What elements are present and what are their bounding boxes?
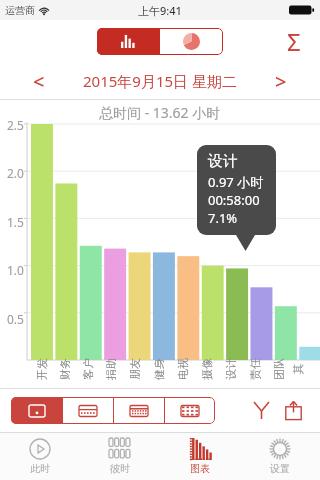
staticText: 1.5	[7, 214, 24, 230]
button[interactable]: Year view	[165, 397, 215, 424]
staticText: 设置	[270, 462, 290, 475]
staticText: 上午9:41	[138, 3, 182, 18]
button[interactable]: Day view	[11, 397, 62, 424]
staticText: 2.0	[7, 165, 24, 181]
button[interactable]: 设计	[208, 152, 264, 227]
staticText: 财务	[58, 358, 72, 380]
staticText: 2.5	[7, 117, 24, 133]
button[interactable]: 2015年9月15日 星期二	[56, 71, 264, 91]
button[interactable]: 此时	[0, 432, 80, 480]
button[interactable]: Previous day	[22, 64, 56, 98]
staticText: 00:58:00	[208, 191, 260, 209]
staticText: 彼时	[110, 462, 130, 475]
staticText: 此时	[30, 462, 50, 475]
staticText: 设计	[224, 358, 238, 380]
staticText: 7.1%	[208, 209, 238, 227]
staticText: <	[33, 68, 45, 95]
staticText: 图表	[190, 462, 210, 475]
button[interactable]: Sum	[276, 23, 312, 59]
staticText: 捐助	[104, 358, 118, 380]
staticText: 开发	[35, 358, 49, 380]
button[interactable]: Bar chart view	[97, 28, 160, 55]
staticText: 其	[290, 363, 304, 374]
staticText: 1.0	[7, 262, 24, 278]
staticText: 健身	[152, 358, 166, 380]
staticText: 总时间 - 13.62 小时	[99, 103, 221, 122]
staticText: 0.5	[7, 311, 24, 327]
button[interactable]: 彼时	[80, 432, 160, 480]
staticText: 设计	[208, 152, 238, 171]
button[interactable]: Month view	[114, 397, 164, 424]
button[interactable]: 设置	[240, 432, 320, 480]
staticText: 摄像	[200, 358, 214, 380]
staticText: 团队	[272, 358, 286, 380]
staticText: 运营商	[5, 4, 35, 17]
staticText: >	[275, 68, 287, 95]
button[interactable]: Pie chart view	[160, 28, 223, 55]
button[interactable]: Week view	[63, 397, 113, 424]
button[interactable]: Filter	[245, 394, 277, 426]
staticText: 客户	[81, 358, 95, 380]
staticText: 2015年9月15日 星期二	[83, 71, 237, 91]
button[interactable]: 图表	[160, 432, 240, 480]
button[interactable]: Next day	[264, 64, 298, 98]
staticText: 责任	[248, 358, 262, 380]
staticText: 电视	[176, 358, 190, 380]
staticText: 0.97 小时	[208, 173, 264, 191]
button[interactable]: Share	[277, 394, 309, 426]
staticText: Σ	[287, 25, 301, 58]
staticText: 朋友	[128, 358, 142, 380]
